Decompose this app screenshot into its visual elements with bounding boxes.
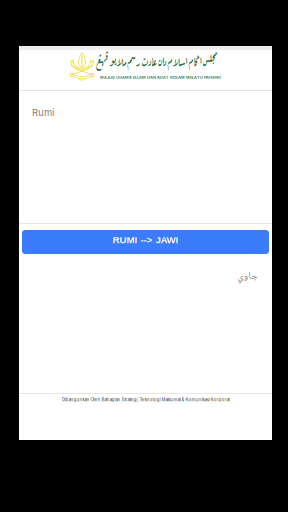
staticText: RUMI --> JAWI <box>112 235 178 245</box>
staticText: جاوي <box>237 268 257 285</box>
staticText: Rumi <box>32 107 54 118</box>
staticText: MAJLIS UGAMA ISLAM DAN ADAT RESAM MELAYU… <box>100 75 221 80</box>
button[interactable]: RUMI --> JAWI <box>22 230 269 254</box>
staticText: مجلس اݢام اسلام دان عادت رسم ملايو ڤهڠ <box>96 50 274 69</box>
staticText: Dibangunkan Oleh Bahagian Strategi, Tekn… <box>61 397 229 402</box>
